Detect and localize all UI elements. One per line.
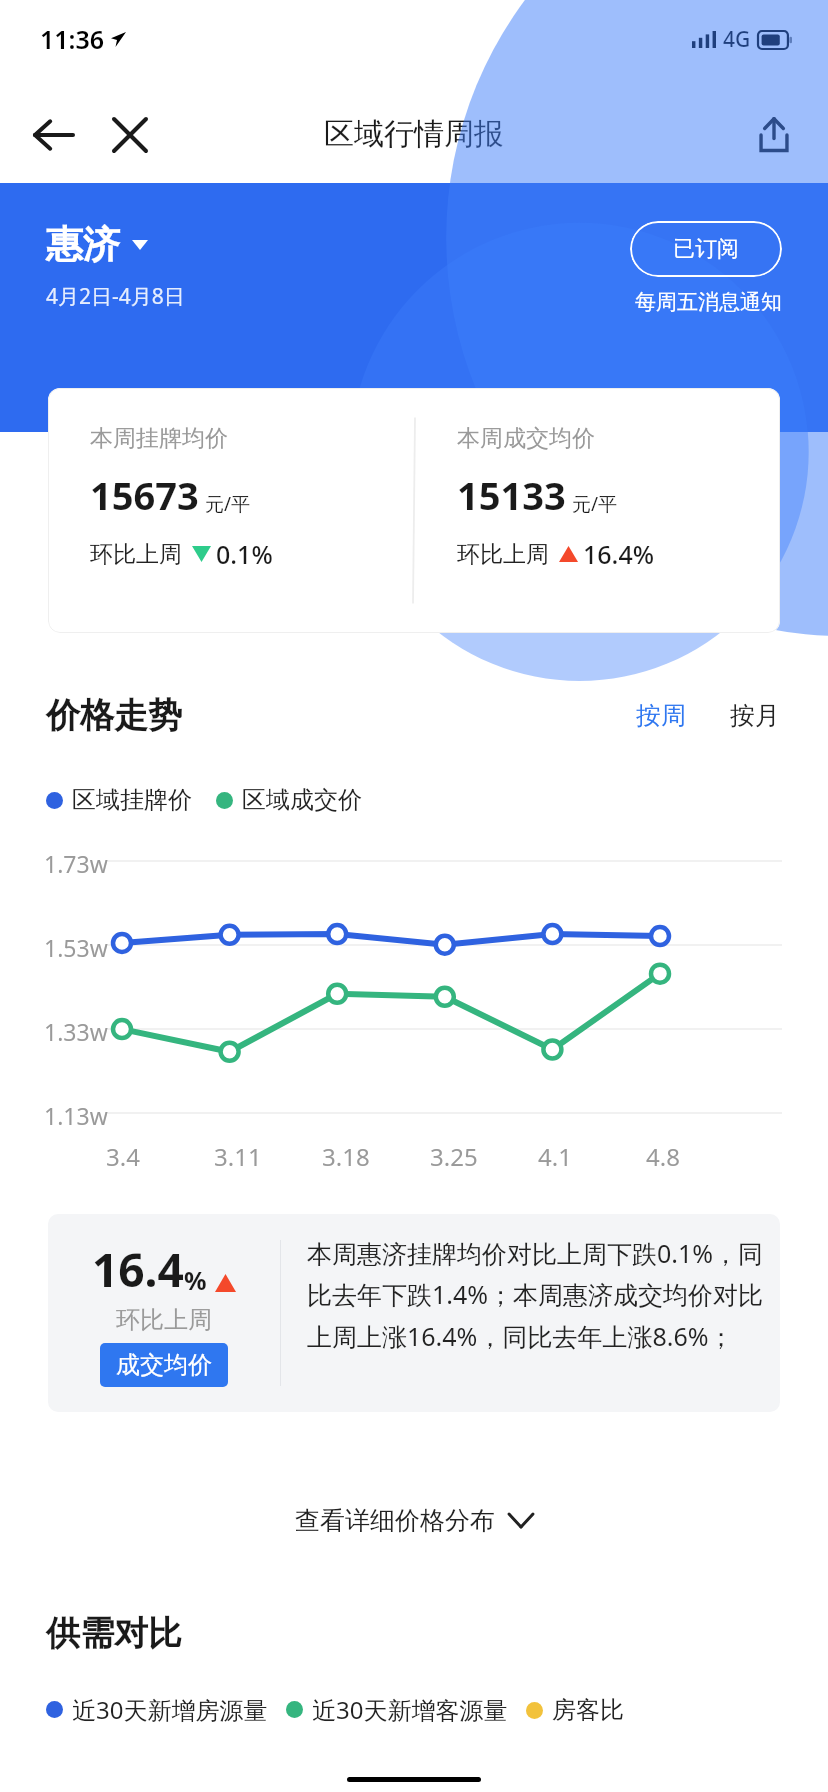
staticText: 16.4	[92, 1238, 184, 1301]
staticText: 1.73w	[44, 848, 108, 879]
staticText: 已订阅	[673, 235, 739, 263]
staticText: 本周挂牌均价	[90, 424, 228, 453]
staticText: 惠济	[46, 221, 120, 268]
staticText: 近30天新增房源量	[72, 1693, 268, 1726]
button[interactable]: 查看详细价格分布	[0, 1480, 828, 1560]
staticText: 4月2日-4月8日	[46, 282, 185, 311]
button[interactable]: 惠济	[46, 221, 148, 268]
staticText: 每周五消息通知	[635, 289, 782, 315]
staticText: 1.53w	[44, 932, 108, 963]
staticText: 3.25	[430, 1140, 478, 1173]
staticText: 本周成交均价	[457, 424, 595, 453]
button[interactable]: 成交均价	[100, 1343, 228, 1387]
staticText: 元/平	[205, 491, 251, 517]
staticText: 成交均价	[116, 1350, 212, 1380]
staticText: 3.18	[322, 1140, 370, 1173]
staticText: 供需对比	[46, 1612, 182, 1655]
staticText: 15673	[90, 469, 199, 521]
staticText: 11:36	[40, 22, 105, 56]
button[interactable]: 已订阅	[630, 221, 782, 277]
staticText: 环比上周	[90, 540, 182, 569]
staticText: 4.8	[646, 1140, 680, 1173]
staticText: 区域成交价	[242, 785, 362, 815]
staticText: 3.4	[106, 1140, 140, 1173]
staticText: 1.33w	[44, 1016, 108, 1047]
button[interactable]: 分享	[736, 97, 812, 173]
staticText: 房客比	[552, 1695, 624, 1725]
button[interactable]: 按月	[722, 692, 788, 739]
staticText: 环比上周	[116, 1305, 212, 1335]
staticText: 价格走势	[46, 694, 182, 737]
button[interactable]: 关闭	[92, 97, 168, 173]
staticText: 1.13w	[44, 1100, 108, 1131]
staticText: 4G	[723, 25, 751, 54]
staticText: 按月	[730, 700, 780, 731]
staticText: 查看详细价格分布	[295, 1505, 495, 1536]
staticText: 16.4%	[583, 537, 655, 571]
staticText: 区域行情周报	[324, 115, 504, 153]
staticText: 按周	[636, 700, 686, 731]
staticText: 本周惠济挂牌均价对比上周下跌0.1%，同比去年下跌1.4%；本周惠济成交均价对比…	[307, 1236, 764, 1354]
staticText: 3.11	[214, 1140, 262, 1173]
staticText: 元/平	[572, 491, 618, 517]
button[interactable]: 按周	[628, 692, 694, 739]
staticText: 0.1%	[216, 537, 273, 571]
staticText: 环比上周	[457, 540, 549, 569]
staticText: 4.1	[538, 1140, 572, 1173]
staticText: 区域挂牌价	[72, 785, 192, 815]
staticText: %	[184, 1263, 207, 1297]
button[interactable]: 返回	[16, 97, 92, 173]
staticText: 15133	[457, 469, 566, 521]
staticText: 近30天新增客源量	[312, 1693, 508, 1726]
